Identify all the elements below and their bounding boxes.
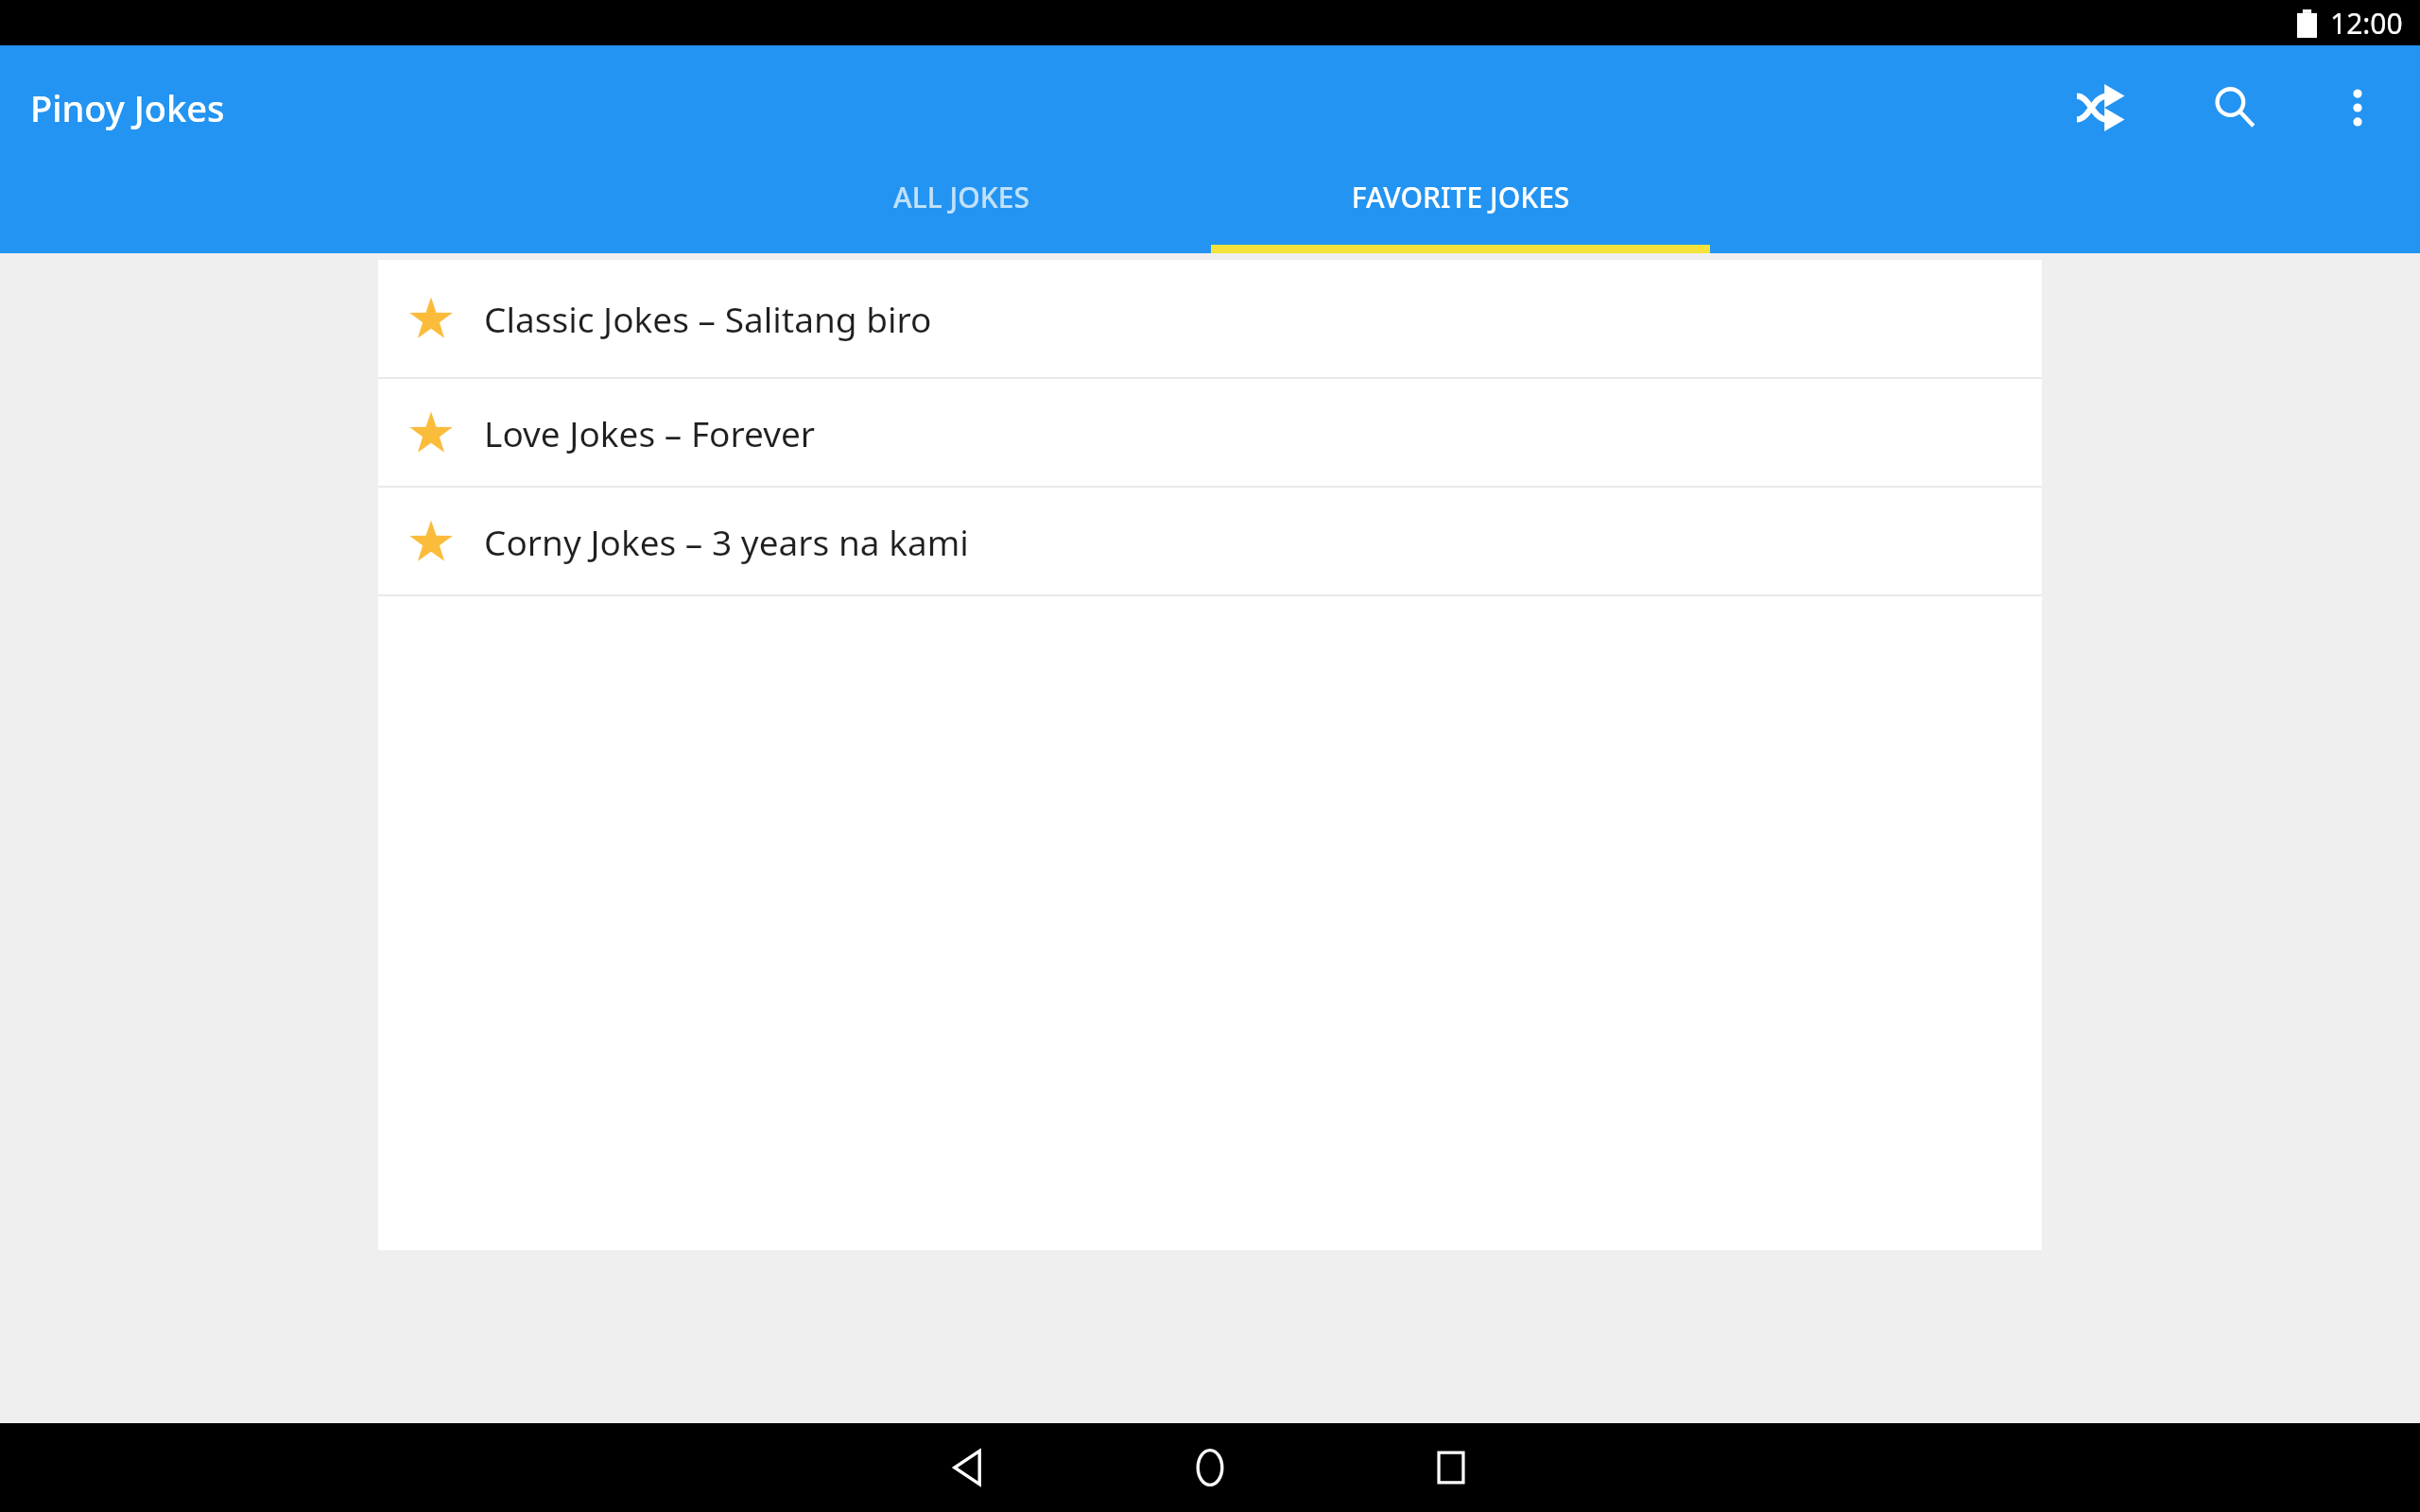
staticText: Love Jokes – Forever (484, 409, 816, 456)
staticText: Pinoy Jokes (30, 83, 225, 132)
button[interactable]: ALL JOKES (712, 170, 1211, 253)
button[interactable]: Love Jokes – Forever (378, 379, 2042, 486)
button[interactable]: Shuffle (2055, 62, 2146, 153)
button[interactable]: Recent apps (1406, 1423, 1496, 1512)
staticText: ALL JOKES (712, 178, 1211, 216)
button[interactable]: Home (1165, 1423, 1255, 1512)
button[interactable]: FAVORITE JOKES (1211, 170, 1710, 253)
staticText: 12:00 (2330, 4, 2403, 43)
button[interactable]: Back (924, 1423, 1014, 1512)
button[interactable]: More options (2312, 62, 2403, 153)
button[interactable]: Search (2189, 62, 2280, 153)
button[interactable]: Corny Jokes – 3 years na kami (378, 488, 2042, 594)
button[interactable]: Classic Jokes – Salitang biro (378, 260, 2042, 377)
staticText: FAVORITE JOKES (1211, 178, 1710, 216)
staticText: Classic Jokes – Salitang biro (484, 295, 932, 342)
staticText: Corny Jokes – 3 years na kami (484, 518, 969, 565)
